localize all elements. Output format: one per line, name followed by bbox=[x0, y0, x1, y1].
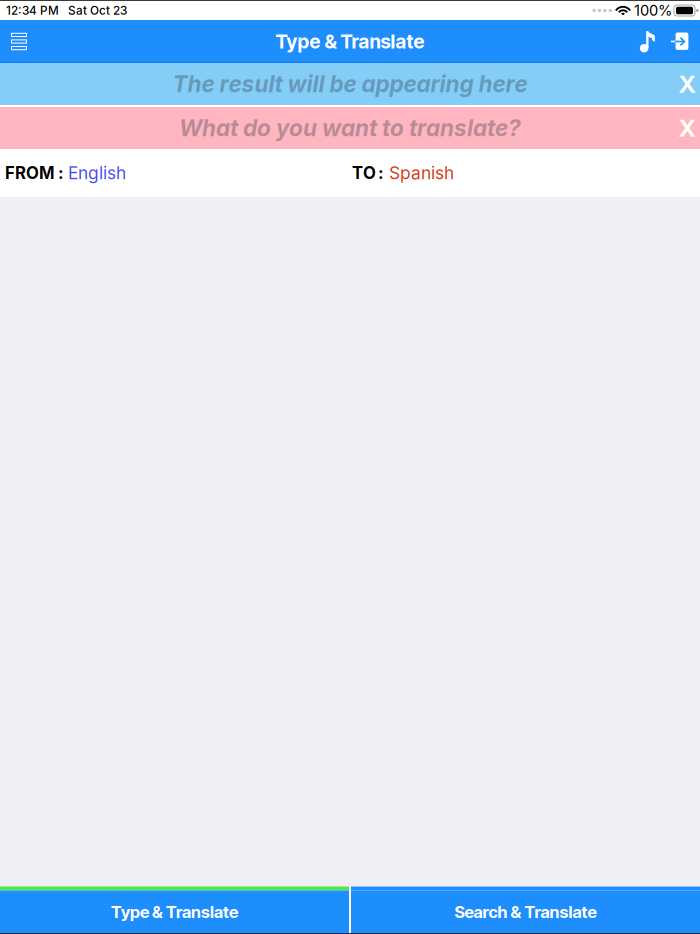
button[interactable]: Search & Translate bbox=[351, 886, 700, 933]
staticText: Spanish bbox=[389, 162, 454, 183]
button[interactable]: Menu bbox=[1, 20, 37, 63]
button[interactable]: FROM bbox=[0, 149, 138, 197]
button[interactable]: TO bbox=[350, 149, 466, 197]
button[interactable]: Clear input bbox=[674, 107, 700, 149]
staticText: What do you want to translate? bbox=[179, 114, 521, 142]
staticText: FROM bbox=[5, 163, 55, 183]
staticText: 100% bbox=[634, 2, 672, 19]
staticText: Sat Oct 23 bbox=[68, 3, 127, 18]
button[interactable]: Music bbox=[632, 20, 664, 63]
staticText: TO bbox=[352, 163, 376, 183]
staticText: X bbox=[678, 69, 695, 98]
staticText: : bbox=[378, 163, 384, 183]
button[interactable]: Type & Translate bbox=[0, 886, 349, 933]
staticText: Search & Translate bbox=[454, 902, 596, 922]
staticText: English bbox=[68, 162, 126, 183]
staticText: : bbox=[58, 163, 64, 183]
button[interactable]: Sign in bbox=[664, 20, 696, 63]
button[interactable]: Clear result bbox=[674, 63, 700, 105]
staticText: Type & Translate bbox=[111, 902, 238, 922]
staticText: X bbox=[678, 113, 695, 142]
staticText: The result will be appearing here bbox=[172, 70, 527, 98]
staticText: 12:34 PM bbox=[6, 3, 59, 18]
staticText: Type & Translate bbox=[275, 30, 424, 53]
